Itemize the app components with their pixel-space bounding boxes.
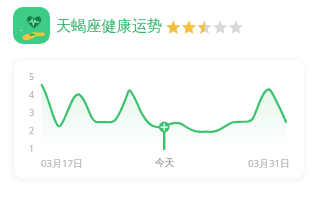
staticText: 03月17日 [41, 157, 84, 170]
staticText: 4 [29, 88, 35, 99]
button[interactable]: Health fortune icon [13, 7, 50, 44]
staticText: 03月31日 [248, 157, 291, 170]
staticText: 5 [29, 70, 35, 81]
staticText: 天蝎座健康运势 [56, 16, 163, 35]
staticText: 2 [29, 124, 35, 135]
button[interactable]: Rating 2.5 of 5 stars [166, 20, 246, 36]
staticText: 3 [29, 106, 35, 117]
button[interactable]: 天蝎座健康运势 [56, 11, 163, 39]
button[interactable]: 5 [14, 60, 304, 178]
staticText: 1 [29, 142, 35, 153]
staticText: 今天 [155, 157, 175, 169]
